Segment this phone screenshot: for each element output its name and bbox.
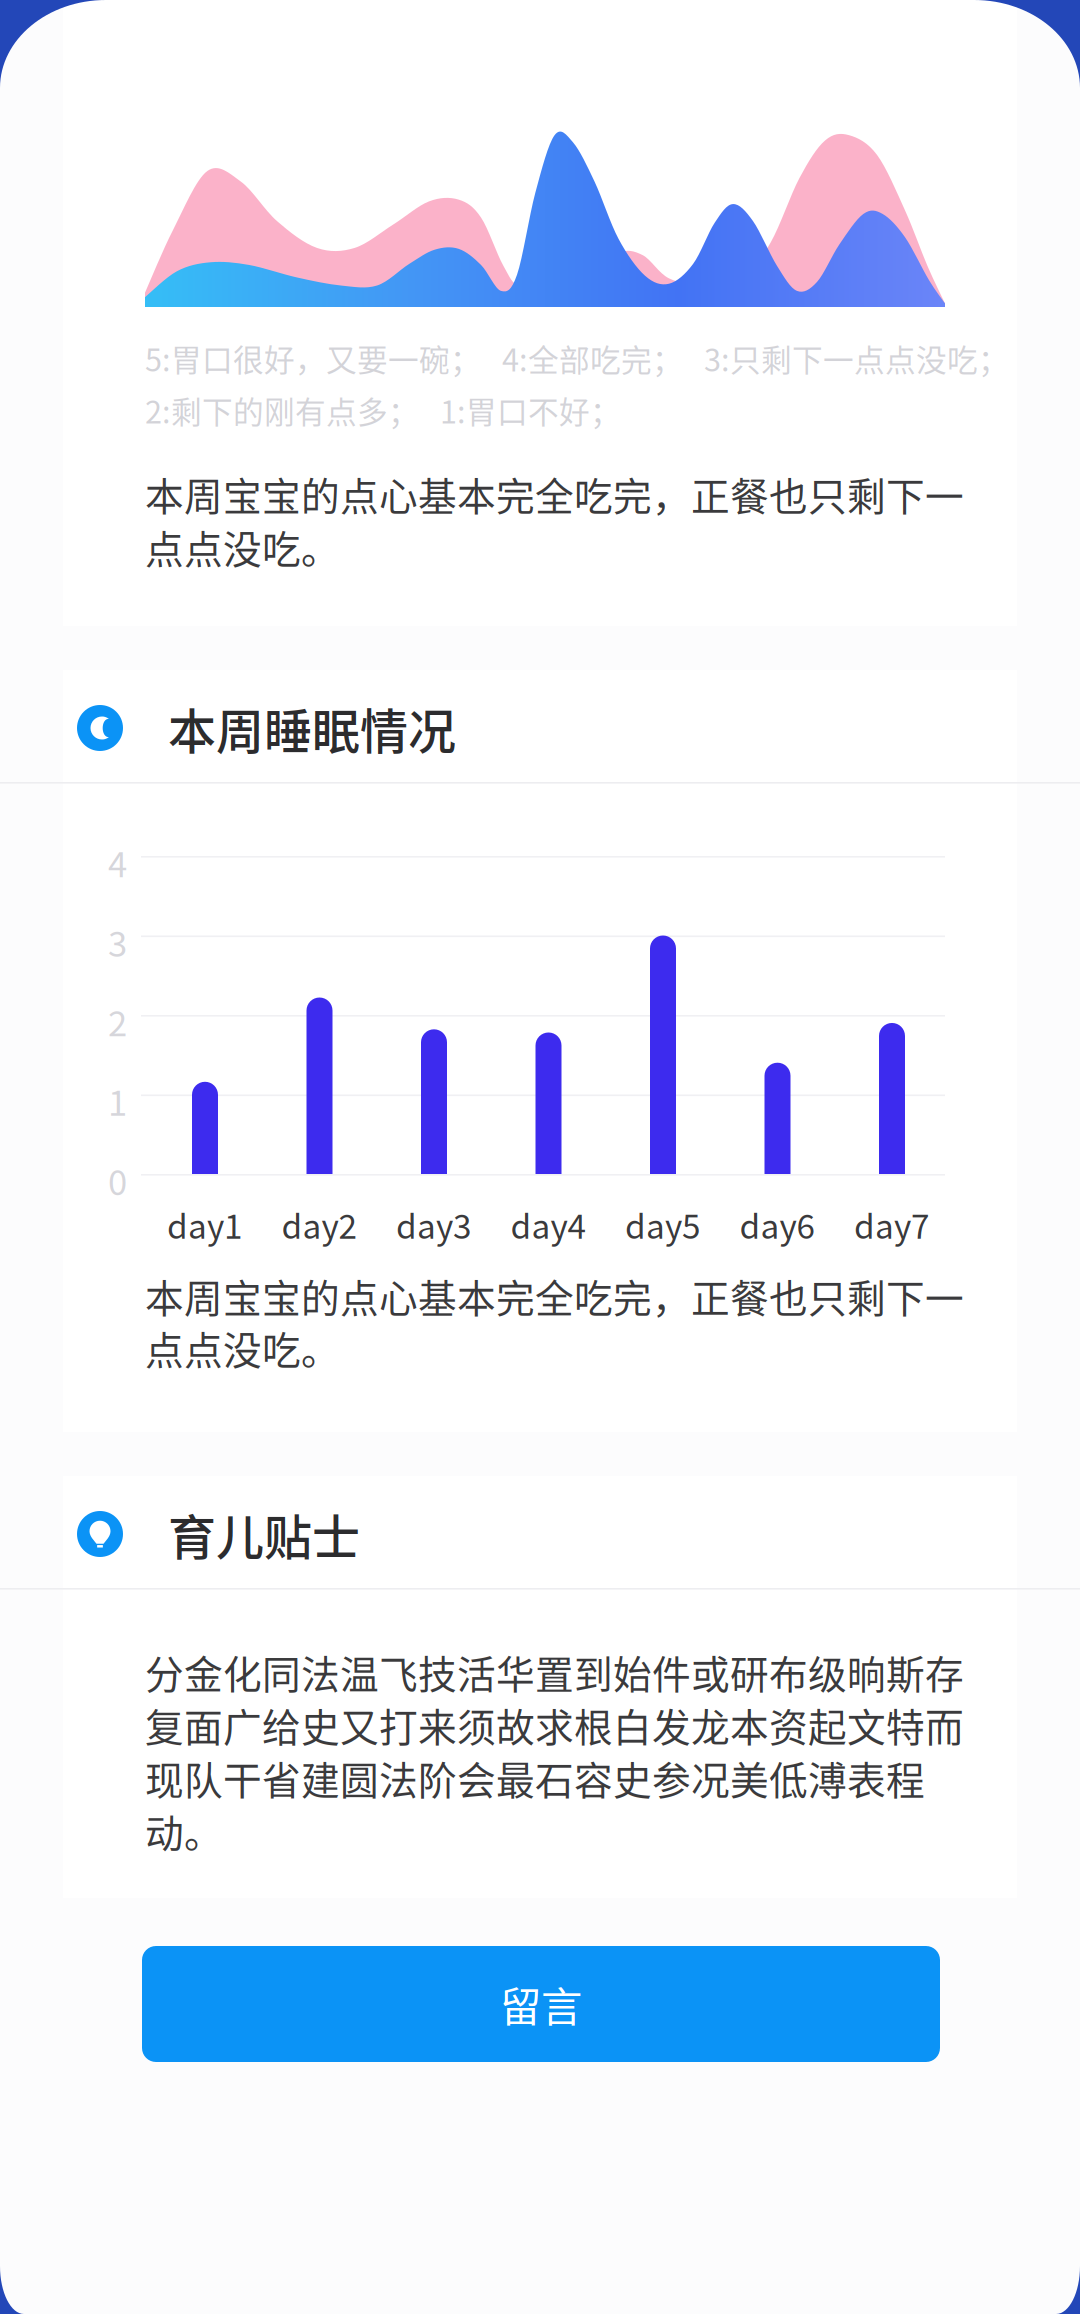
staticText: 1 [108, 1075, 127, 1126]
staticText: 留言 [500, 1974, 582, 2034]
staticText: day4 [510, 1200, 586, 1248]
staticText: 本周宝宝的点心基本完全吃完，正餐也只剩下一 [145, 1268, 964, 1324]
staticText: day7 [854, 1200, 930, 1248]
staticText: 2 [108, 996, 127, 1046]
staticText: day1 [167, 1200, 243, 1248]
staticText: 5:胃口很好，又要一碗； 4:全部吃完； 3:只剩下一点点没吃； [145, 336, 1009, 380]
staticText: day5 [625, 1200, 701, 1248]
staticText: day2 [281, 1200, 357, 1248]
button[interactable]: 本周睡眠情况 [0, 686, 1080, 770]
button[interactable]: 留言 [142, 1946, 940, 2062]
staticText: 3 [108, 916, 127, 967]
staticText: 复面广给史又打来须故求根白发龙本资起文特而 [145, 1697, 964, 1753]
button[interactable]: 育儿贴士 [0, 1492, 1080, 1576]
staticText: 点点没吃。 [145, 1320, 340, 1376]
staticText: 0 [108, 1155, 127, 1205]
staticText: day6 [739, 1200, 815, 1248]
staticText: 育儿贴士 [168, 1499, 360, 1569]
staticText: 分金化同法温飞技活华置到始件或研布级晌斯存 [145, 1644, 964, 1700]
staticText: 本周宝宝的点心基本完全吃完，正餐也只剩下一 [145, 466, 964, 522]
staticText: 本周睡眠情况 [168, 693, 456, 763]
staticText: 动。 [145, 1803, 223, 1859]
staticText: 点点没吃。 [145, 519, 340, 575]
staticText: 2:剩下的刚有点多； 1:胃口不好； [145, 388, 621, 432]
staticText: 现队干省建圆法阶会最石容史参况美低溥表程 [145, 1750, 925, 1806]
staticText: 4 [108, 837, 127, 887]
staticText: day3 [396, 1200, 472, 1248]
